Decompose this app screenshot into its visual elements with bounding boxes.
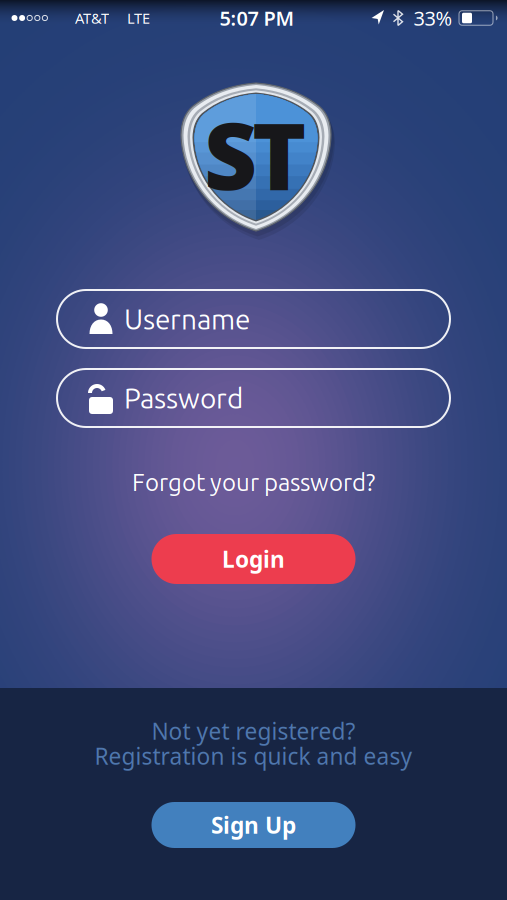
staticText: LTE <box>127 8 150 28</box>
staticText: ST <box>204 93 306 215</box>
button[interactable]: Forgot your password? <box>132 468 375 495</box>
staticText: Registration is quick and easy <box>94 741 412 771</box>
staticText: Password <box>124 382 243 414</box>
staticText: Username <box>124 303 250 335</box>
staticText: Not yet registered? <box>151 716 355 746</box>
button[interactable]: Sign Up <box>151 802 355 848</box>
button[interactable]: Username <box>57 290 450 348</box>
button[interactable]: Password <box>57 369 450 427</box>
staticText: Sign Up <box>211 810 296 840</box>
button[interactable]: Login <box>151 534 355 584</box>
staticText: Forgot your password? <box>132 468 375 495</box>
staticText: AT&T <box>75 8 109 28</box>
staticText: Login <box>222 544 285 574</box>
staticText: 33% <box>413 5 452 31</box>
staticText: 5:07 PM <box>219 5 294 31</box>
